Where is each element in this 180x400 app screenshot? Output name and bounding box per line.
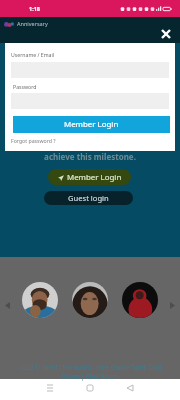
button[interactable]: Next xyxy=(167,300,178,311)
staticText: Room | Chat Room xyxy=(62,372,118,380)
button[interactable]: Member Login xyxy=(48,169,131,185)
button[interactable]: Recents xyxy=(41,379,58,396)
staticText: Member Login xyxy=(64,119,119,130)
staticText: 2023 © Tamil Chat Room - Free Online Tam… xyxy=(19,363,162,371)
button[interactable]: Profile 3 xyxy=(122,282,158,318)
button[interactable]: Previous xyxy=(2,300,13,311)
staticText: achieve this milestone. xyxy=(0,151,180,162)
staticText: Guest login xyxy=(68,193,109,203)
button[interactable]: Forgot password ? xyxy=(11,137,56,144)
button[interactable]: Close xyxy=(157,25,174,42)
button[interactable]: Home xyxy=(81,379,98,396)
button[interactable]: Member Login xyxy=(13,116,170,133)
staticText: Anniversary xyxy=(17,20,48,27)
button[interactable]: Back xyxy=(121,379,138,396)
button[interactable]: Profile 1 xyxy=(22,282,58,318)
staticText: Username / Email xyxy=(11,51,55,58)
button[interactable]: Guest login xyxy=(44,191,133,205)
staticText: Member Login xyxy=(67,172,122,183)
staticText: Password xyxy=(13,83,37,90)
staticText: 1:18 xyxy=(29,5,40,12)
button[interactable]: Profile 2 xyxy=(72,282,108,318)
